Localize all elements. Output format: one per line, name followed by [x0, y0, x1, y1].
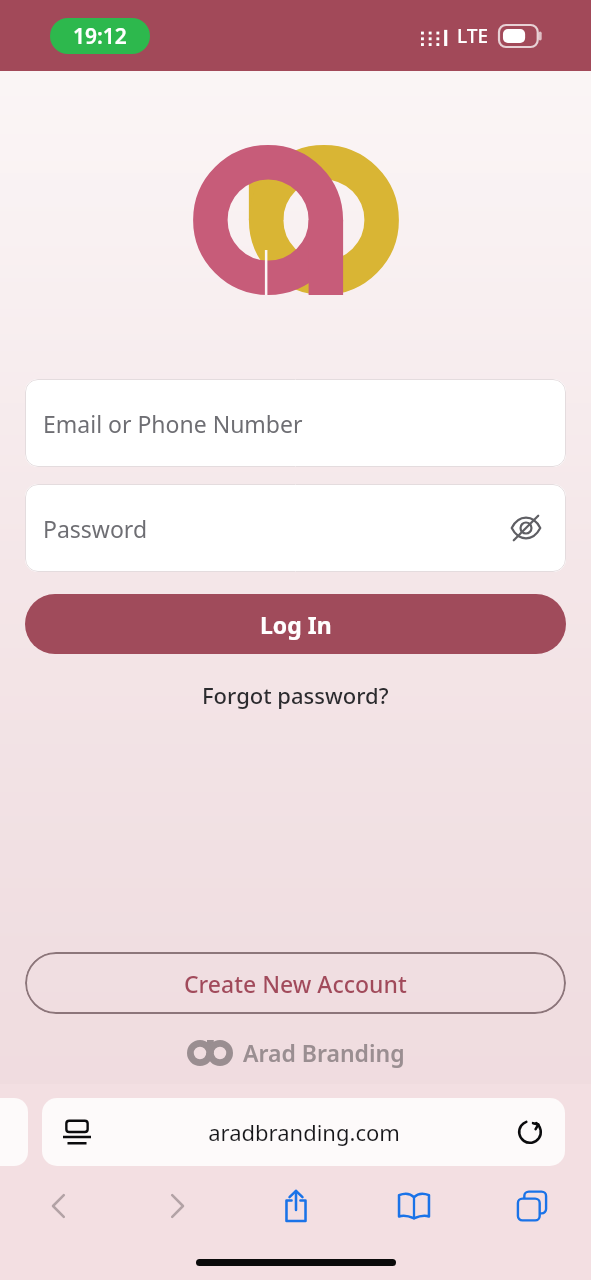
- staticText: Email or Phone Number: [43, 408, 303, 439]
- button[interactable]: Page settings: [60, 1115, 94, 1149]
- button[interactable]: Forgot password?: [192, 676, 399, 714]
- button[interactable]: Email or Phone Number: [25, 379, 566, 467]
- staticText: Log In: [260, 609, 332, 640]
- staticText: aradbranding.com: [208, 1117, 400, 1147]
- button[interactable]: Log In: [25, 594, 566, 654]
- button[interactable]: Show password: [504, 506, 548, 550]
- button[interactable]: Bookmarks: [383, 1175, 445, 1237]
- button[interactable]: Password: [25, 484, 566, 572]
- staticText: Arad Branding: [243, 1037, 405, 1068]
- button[interactable]: Tabs: [501, 1175, 563, 1237]
- staticText: Password: [43, 513, 148, 544]
- button[interactable]: Share: [265, 1175, 327, 1237]
- staticText: LTE: [457, 23, 489, 49]
- button[interactable]: Create New Account: [25, 952, 566, 1014]
- button[interactable]: Back: [28, 1175, 90, 1237]
- staticText: Forgot password?: [202, 680, 389, 710]
- button[interactable]: Reload: [513, 1115, 547, 1149]
- staticText: Create New Account: [184, 968, 407, 999]
- button[interactable]: Forward: [146, 1175, 208, 1237]
- button[interactable]: Page settings: [42, 1098, 565, 1166]
- staticText: 19:12: [73, 22, 127, 51]
